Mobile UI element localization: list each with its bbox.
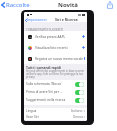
staticText: Sulla schermata 'Blocco' [26, 82, 62, 86]
staticText: Suggerimenti nella ricerca [26, 98, 66, 102]
button[interactable]: Share [103, 0, 117, 10]
staticText: Tutti i comandi rapidi [26, 65, 61, 69]
staticText: Verifica prezzo AAPL [35, 35, 66, 39]
button[interactable]: Suggerimenti nella ricerca [24, 96, 87, 104]
button[interactable]: Voce Siri [24, 114, 87, 120]
staticText: Registra un nuovo memo vocale [35, 57, 84, 61]
button[interactable]: Raccolte [0, 0, 32, 10]
staticText: Voce Siri [26, 115, 39, 119]
button[interactable]: Verifica prezzo AAPL [24, 31, 87, 42]
staticText: Prima di avere Siri per ... [26, 90, 63, 94]
button[interactable]: Impostazioni [25, 18, 47, 22]
staticText: Siri può offrirti dei suggerimenti in ba… [26, 69, 87, 78]
button[interactable]: Lingua [24, 108, 87, 114]
staticText: Donna [73, 115, 83, 119]
button[interactable]: Registra un nuovo memo vocale [24, 53, 87, 64]
button[interactable]: Visualizza foto recenti [24, 42, 87, 53]
button[interactable]: Prima di avere Siri per ... [24, 88, 87, 96]
staticText: Visualizza foto recenti [35, 46, 68, 50]
button[interactable]: Sulla schermata 'Blocco' [24, 80, 87, 88]
staticText: Raccolte [6, 1, 30, 9]
staticText: Siri e Ricerca [55, 17, 78, 22]
staticText: Novità [58, 1, 78, 9]
staticText: COMANDI RAPIDI SUGGERITI [26, 28, 63, 32]
staticText: Lingua [26, 109, 37, 113]
staticText: Impostazioni [27, 18, 47, 22]
staticText: Italiano [71, 109, 83, 113]
